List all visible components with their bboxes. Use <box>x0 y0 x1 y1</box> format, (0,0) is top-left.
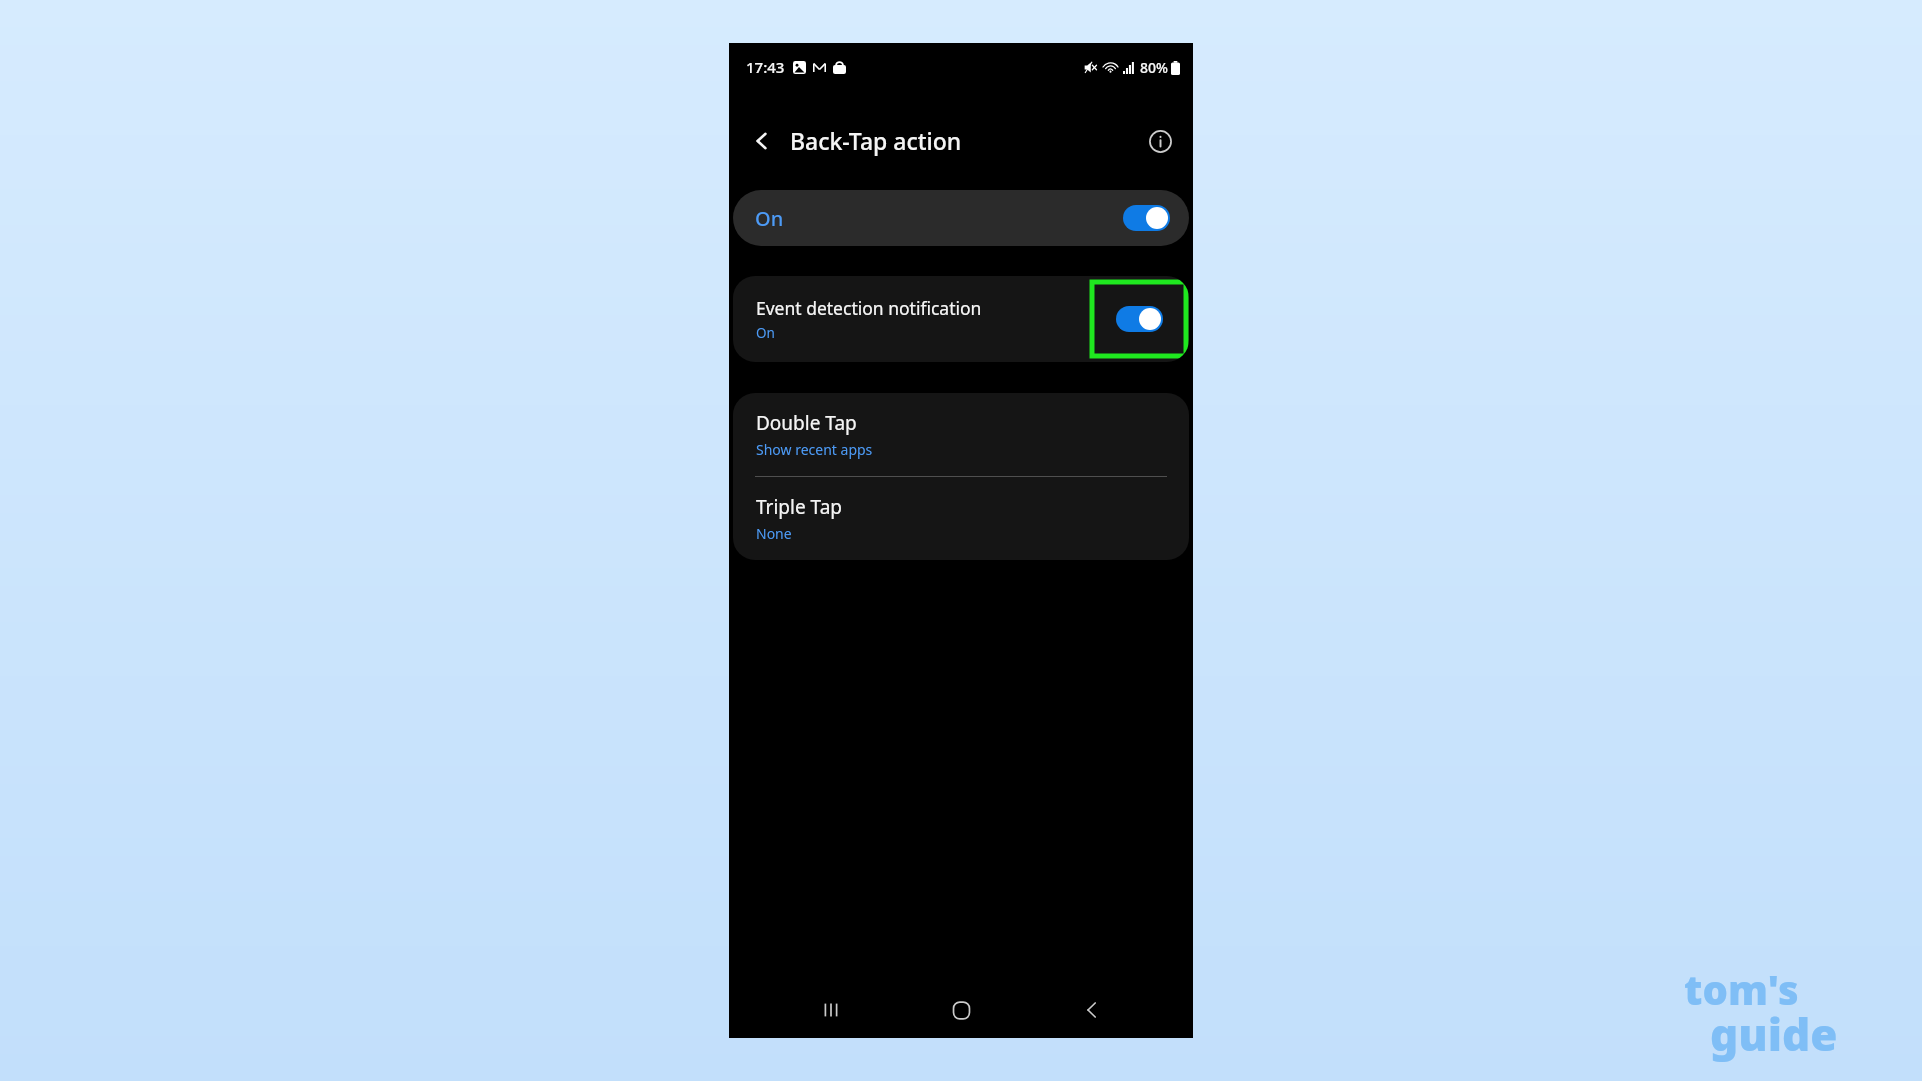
button[interactable]: Back <box>1063 982 1121 1038</box>
staticText: Back-Tap action <box>790 125 962 156</box>
button[interactable]: Home <box>932 982 990 1038</box>
button[interactable]: Information <box>1139 120 1181 162</box>
button[interactable]: Recent apps <box>802 982 860 1038</box>
staticText: Show recent apps <box>756 440 873 459</box>
staticText: On <box>755 205 784 232</box>
button[interactable]: Toggle on <box>1116 306 1163 332</box>
button[interactable]: Back <box>741 120 783 162</box>
staticText: 17:43 <box>746 57 785 77</box>
staticText: None <box>756 524 792 543</box>
staticText: Double Tap <box>756 410 857 436</box>
button[interactable]: Triple Tap <box>733 477 1189 560</box>
staticText: On <box>756 324 775 342</box>
staticText: Event detection notification <box>756 296 982 320</box>
button[interactable]: On <box>733 190 1189 246</box>
button[interactable]: Toggle on <box>1123 205 1170 231</box>
staticText: tom's <box>1684 962 1799 1016</box>
staticText: Triple Tap <box>756 494 842 520</box>
button[interactable]: Event detection notification toggle <box>1092 282 1186 356</box>
staticText: guide <box>1710 1004 1838 1064</box>
button[interactable]: Double Tap <box>733 393 1189 476</box>
staticText: 80% <box>1140 58 1168 77</box>
